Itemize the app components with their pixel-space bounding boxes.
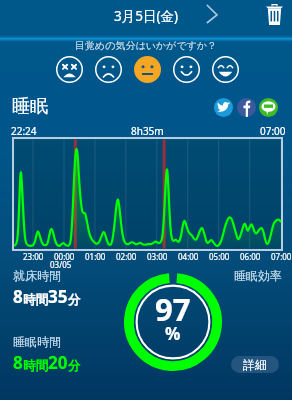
staticText: 23:00 <box>23 251 44 262</box>
button[interactable]: Mood 2 <box>93 54 123 84</box>
staticText: 睡眠時間 <box>13 334 61 349</box>
staticText: 3月5日(金) <box>114 7 179 25</box>
staticText: 目覚めの気分はいかがですか？ <box>75 39 218 52</box>
staticText: 22:24 <box>11 124 37 138</box>
staticText: 02:00 <box>116 251 137 262</box>
button[interactable]: Next day <box>200 2 226 28</box>
staticText: 03:00 <box>147 251 168 262</box>
staticText: 分 <box>68 358 81 374</box>
staticText: 01:00 <box>85 251 106 262</box>
button[interactable]: Mood 3 <box>132 54 162 84</box>
staticText: 時間 <box>23 358 48 374</box>
staticText: 時間 <box>23 292 48 308</box>
button[interactable]: Delete <box>262 0 286 28</box>
button[interactable]: 3月5日(金) <box>112 4 180 28</box>
staticText: 20 <box>48 351 68 374</box>
staticText: 04:00 <box>178 251 199 262</box>
button[interactable]: Mood 5 <box>210 54 240 84</box>
button[interactable]: 睡眠時間 <box>13 334 61 349</box>
staticText: 03/05 <box>50 259 72 270</box>
staticText: 就床時間 <box>13 268 61 283</box>
button[interactable]: LINE <box>259 98 278 117</box>
staticText: 睡眠効率 <box>234 268 282 283</box>
button[interactable]: 睡眠 <box>12 95 48 118</box>
button[interactable]: Facebook <box>237 98 256 117</box>
staticText: 97 <box>155 288 191 330</box>
button[interactable]: 就床時間 <box>13 268 61 283</box>
button[interactable]: 睡眠効率 <box>234 268 282 283</box>
staticText: 00:00 <box>54 251 75 262</box>
staticText: 8 <box>13 285 23 308</box>
staticText: 8h35m <box>131 124 164 138</box>
staticText: 35 <box>48 285 68 308</box>
staticText: 05:00 <box>209 251 230 262</box>
staticText: 詳細 <box>243 357 267 372</box>
staticText: 睡眠 <box>12 95 48 118</box>
staticText: 07:00 <box>260 124 286 138</box>
staticText: 8 <box>13 351 23 374</box>
button[interactable]: Mood 1 <box>54 54 84 84</box>
button[interactable]: 詳細 <box>231 356 279 373</box>
staticText: % <box>165 322 181 345</box>
staticText: 07:00 <box>271 251 292 262</box>
staticText: 06:00 <box>240 251 261 262</box>
button[interactable]: Mood 4 <box>171 54 201 84</box>
button[interactable]: Twitter <box>214 98 233 117</box>
staticText: 分 <box>68 292 81 308</box>
